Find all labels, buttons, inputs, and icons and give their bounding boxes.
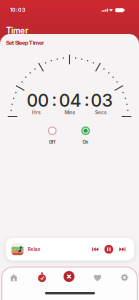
- button[interactable]: Timer: [35, 270, 49, 284]
- staticText: Relax: [28, 246, 41, 252]
- staticText: Set Sleep Timer: [6, 39, 44, 46]
- button[interactable]: Off: [49, 127, 56, 145]
- button[interactable]: Previous: [91, 244, 101, 254]
- staticText: 03: [91, 90, 113, 111]
- button[interactable]: Pause: [104, 245, 113, 254]
- staticText: 00: [27, 90, 49, 111]
- staticText: 10:03: [10, 7, 25, 13]
- button[interactable]: Settings: [117, 270, 131, 284]
- button[interactable]: Next: [117, 244, 127, 254]
- button[interactable]: Relax: [6, 238, 86, 260]
- button[interactable]: Home: [7, 270, 21, 284]
- staticText: Timer: [6, 26, 28, 36]
- staticText: :: [52, 89, 57, 110]
- staticText: On: [83, 139, 89, 145]
- button[interactable]: Favorites: [90, 270, 104, 284]
- staticText: Off: [49, 139, 56, 145]
- staticText: 04: [59, 90, 81, 111]
- button[interactable]: Close: [62, 269, 76, 283]
- staticText: Mins: [64, 110, 75, 115]
- button[interactable]: On: [82, 127, 89, 145]
- staticText: Hrs: [32, 110, 41, 115]
- staticText: :: [84, 89, 89, 110]
- staticText: Secs: [95, 110, 107, 115]
